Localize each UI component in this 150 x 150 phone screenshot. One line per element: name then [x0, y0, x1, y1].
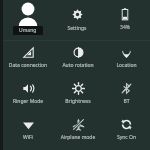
button[interactable]: Location — [103, 41, 150, 76]
button[interactable]: Airplane mode — [53, 113, 103, 148]
staticText: Umang — [19, 27, 37, 34]
staticText: BT — [103, 98, 150, 105]
staticText: Auto rotation — [53, 62, 103, 69]
button[interactable]: Battery 34 percent — [101, 0, 149, 40]
button[interactable]: Settings — [53, 0, 101, 40]
button[interactable]: Brightness — [53, 77, 103, 112]
button[interactable]: WiFi — [3, 113, 53, 148]
staticText: Data connection — [3, 62, 53, 69]
staticText: Sync On — [103, 134, 150, 141]
button[interactable]: Sync On — [103, 113, 150, 148]
button[interactable]: User profile — [4, 0, 52, 40]
staticText: Brightness — [53, 98, 103, 105]
button[interactable]: Data connection — [3, 41, 53, 76]
button[interactable]: Auto rotation — [53, 41, 103, 76]
staticText: Airplane mode — [53, 134, 103, 141]
button[interactable]: Ringer Mode — [3, 77, 53, 112]
staticText: 34% — [101, 24, 149, 31]
staticText: Settings — [53, 25, 101, 32]
button[interactable]: BT — [103, 77, 150, 112]
staticText: WiFi — [3, 134, 53, 141]
staticText: Location — [103, 62, 150, 69]
staticText: Ringer Mode — [3, 98, 53, 105]
